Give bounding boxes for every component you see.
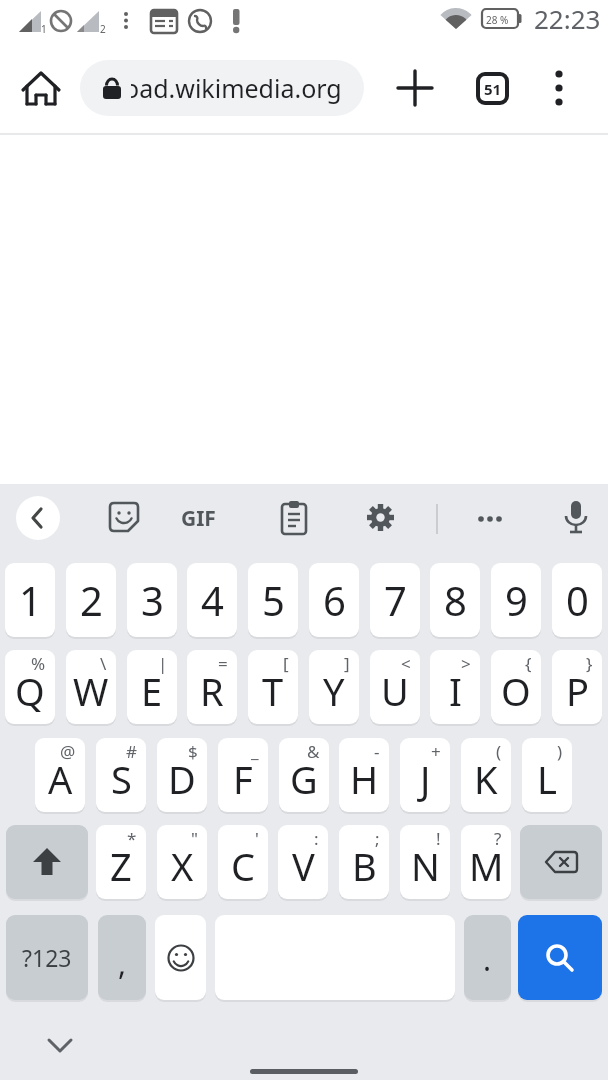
button[interactable]: A: [35, 738, 85, 812]
staticText: J: [420, 753, 431, 805]
button[interactable]: Y: [309, 650, 359, 724]
button[interactable]: E: [127, 650, 177, 724]
button[interactable]: [18, 65, 64, 111]
button[interactable]: 4: [187, 563, 237, 637]
button[interactable]: 1: [5, 563, 55, 637]
button[interactable]: [560, 499, 592, 539]
button[interactable]: Z: [96, 825, 146, 899]
staticText: B: [352, 840, 377, 892]
button[interactable]: ?123: [6, 915, 88, 1000]
staticText: ?: [494, 827, 502, 850]
staticText: 4: [201, 573, 224, 627]
button[interactable]: G: [279, 738, 329, 812]
staticText: [: [283, 652, 289, 675]
staticText: ): [557, 740, 563, 763]
staticText: oad.wikimedia.org: [131, 71, 342, 105]
staticText: T: [262, 665, 284, 717]
button[interactable]: [279, 500, 309, 536]
button[interactable]: [38, 1032, 82, 1062]
button[interactable]: F: [218, 738, 268, 812]
button[interactable]: J: [400, 738, 450, 812]
staticText: 28 %: [486, 13, 509, 27]
button[interactable]: S: [96, 738, 146, 812]
staticText: A: [48, 753, 73, 805]
button[interactable]: V: [278, 825, 328, 899]
staticText: :: [314, 827, 319, 850]
button[interactable]: H: [339, 738, 389, 812]
staticText: W: [73, 665, 109, 717]
staticText: \: [100, 652, 107, 675]
staticText: ": [191, 827, 198, 850]
button[interactable]: 7: [370, 563, 420, 637]
button[interactable]: [364, 501, 397, 534]
button[interactable]: 9: [491, 563, 541, 637]
button[interactable]: [108, 501, 140, 533]
staticText: Y: [323, 665, 345, 717]
staticText: M: [469, 840, 504, 892]
button[interactable]: [518, 915, 602, 1000]
staticText: G: [290, 753, 318, 805]
staticText: V: [292, 840, 315, 892]
button[interactable]: 0: [552, 563, 602, 637]
button[interactable]: 51: [476, 72, 509, 105]
staticText: 9: [505, 573, 528, 627]
staticText: GIF: [181, 504, 216, 533]
button[interactable]: .: [464, 915, 511, 1000]
button[interactable]: D: [157, 738, 207, 812]
staticText: 5: [262, 573, 285, 627]
staticText: I: [449, 665, 462, 717]
staticText: !: [436, 827, 441, 850]
staticText: }: [586, 652, 593, 675]
button[interactable]: I: [430, 650, 480, 724]
button[interactable]: K: [461, 738, 511, 812]
button[interactable]: M: [461, 825, 511, 899]
staticText: Q: [15, 665, 45, 717]
staticText: D: [168, 753, 196, 805]
button[interactable]: [470, 506, 510, 532]
button[interactable]: W: [66, 650, 116, 724]
staticText: 22:23: [534, 1, 601, 36]
button[interactable]: R: [187, 650, 237, 724]
button[interactable]: P: [552, 650, 602, 724]
staticText: 0: [566, 573, 589, 627]
button[interactable]: [545, 66, 573, 110]
button[interactable]: ,: [98, 915, 146, 1000]
button[interactable]: X: [157, 825, 207, 899]
staticText: +: [431, 740, 441, 763]
staticText: @: [60, 740, 76, 763]
button[interactable]: [155, 915, 206, 1000]
button[interactable]: U: [370, 650, 420, 724]
staticText: ]: [344, 652, 350, 675]
staticText: <: [401, 652, 411, 675]
button[interactable]: T: [248, 650, 298, 724]
button[interactable]: [520, 825, 602, 899]
staticText: ,: [118, 943, 127, 984]
button[interactable]: 3: [127, 563, 177, 637]
button[interactable]: L: [522, 738, 572, 812]
staticText: _: [251, 740, 259, 763]
button[interactable]: N: [400, 825, 450, 899]
staticText: %: [31, 652, 46, 675]
staticText: #: [126, 740, 137, 763]
button[interactable]: 5: [248, 563, 298, 637]
staticText: $: [188, 740, 198, 763]
staticText: H: [350, 753, 379, 805]
button[interactable]: Q: [5, 650, 55, 724]
button[interactable]: 8: [430, 563, 480, 637]
button[interactable]: [16, 496, 60, 540]
button[interactable]: C: [218, 825, 268, 899]
button[interactable]: 2: [66, 563, 116, 637]
button[interactable]: B: [339, 825, 389, 899]
button[interactable]: 6: [309, 563, 359, 637]
staticText: *: [127, 827, 137, 850]
staticText: L: [537, 753, 557, 805]
staticText: F: [233, 753, 253, 805]
button[interactable]: O: [491, 650, 541, 724]
button[interactable]: [393, 66, 437, 110]
staticText: ': [255, 827, 259, 850]
staticText: |: [158, 652, 168, 675]
staticText: 3: [141, 573, 164, 627]
button[interactable]: [6, 825, 88, 899]
button[interactable]: oad.wikimedia.org: [80, 60, 364, 116]
